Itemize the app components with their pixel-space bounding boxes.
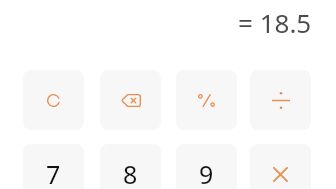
button[interactable]: Clear: [23, 70, 84, 130]
button[interactable]: Backspace: [100, 70, 161, 130]
button[interactable]: 9: [176, 144, 237, 189]
staticText: 7: [46, 157, 61, 189]
staticText: 9: [199, 157, 214, 189]
staticText: = 18.5: [238, 5, 312, 40]
button[interactable]: Percent: [176, 70, 237, 130]
button[interactable]: 8: [100, 144, 161, 189]
staticText: 8: [123, 157, 138, 189]
button[interactable]: 7: [23, 144, 84, 189]
button[interactable]: Divide: [250, 70, 311, 130]
button[interactable]: Multiply: [250, 144, 311, 189]
